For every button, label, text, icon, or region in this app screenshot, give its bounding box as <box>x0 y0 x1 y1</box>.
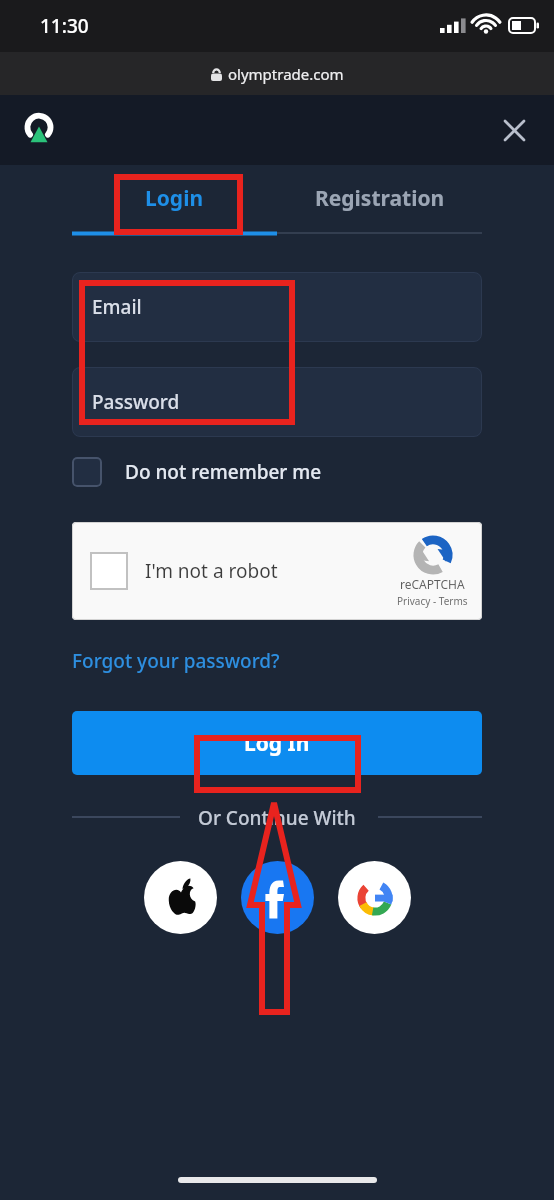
staticText: Log In <box>244 729 310 758</box>
staticText: 11:30 <box>40 13 89 39</box>
button[interactable]: Email <box>72 272 482 342</box>
staticText: Password <box>92 389 180 415</box>
button[interactable]: Log In <box>72 711 482 775</box>
button[interactable]: Registration <box>277 165 482 231</box>
button[interactable]: Close <box>494 110 534 150</box>
staticText: Do not remember me <box>125 459 322 485</box>
button[interactable]: Olymp Trade home <box>18 109 60 151</box>
button[interactable]: Password <box>72 367 482 437</box>
staticText: olymptrade.com <box>228 64 344 84</box>
staticText: Or Continue With <box>198 805 356 829</box>
button[interactable]: Do not remember me <box>72 456 482 488</box>
staticText: Email <box>92 294 142 320</box>
button[interactable]: Login <box>72 165 277 231</box>
staticText: Registration <box>315 184 445 213</box>
button[interactable]: I'm not a robot <box>72 522 482 620</box>
staticText: reCAPTCHA <box>400 576 465 592</box>
staticText: Privacy - Terms <box>397 594 468 608</box>
button[interactable]: Sign in with Facebook <box>241 861 314 934</box>
button[interactable]: Sign in with Apple <box>144 861 217 934</box>
button[interactable]: Sign in with Google <box>338 861 411 934</box>
staticText: Login <box>145 184 204 213</box>
staticText: Forgot your password? <box>72 648 280 674</box>
staticText: I'm not a robot <box>145 558 278 584</box>
button[interactable]: Forgot your password? <box>72 648 280 674</box>
